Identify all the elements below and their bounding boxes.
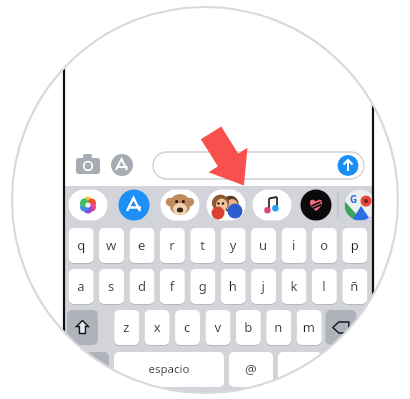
button[interactable]: iMessage apps drawer: [0, 0, 410, 399]
